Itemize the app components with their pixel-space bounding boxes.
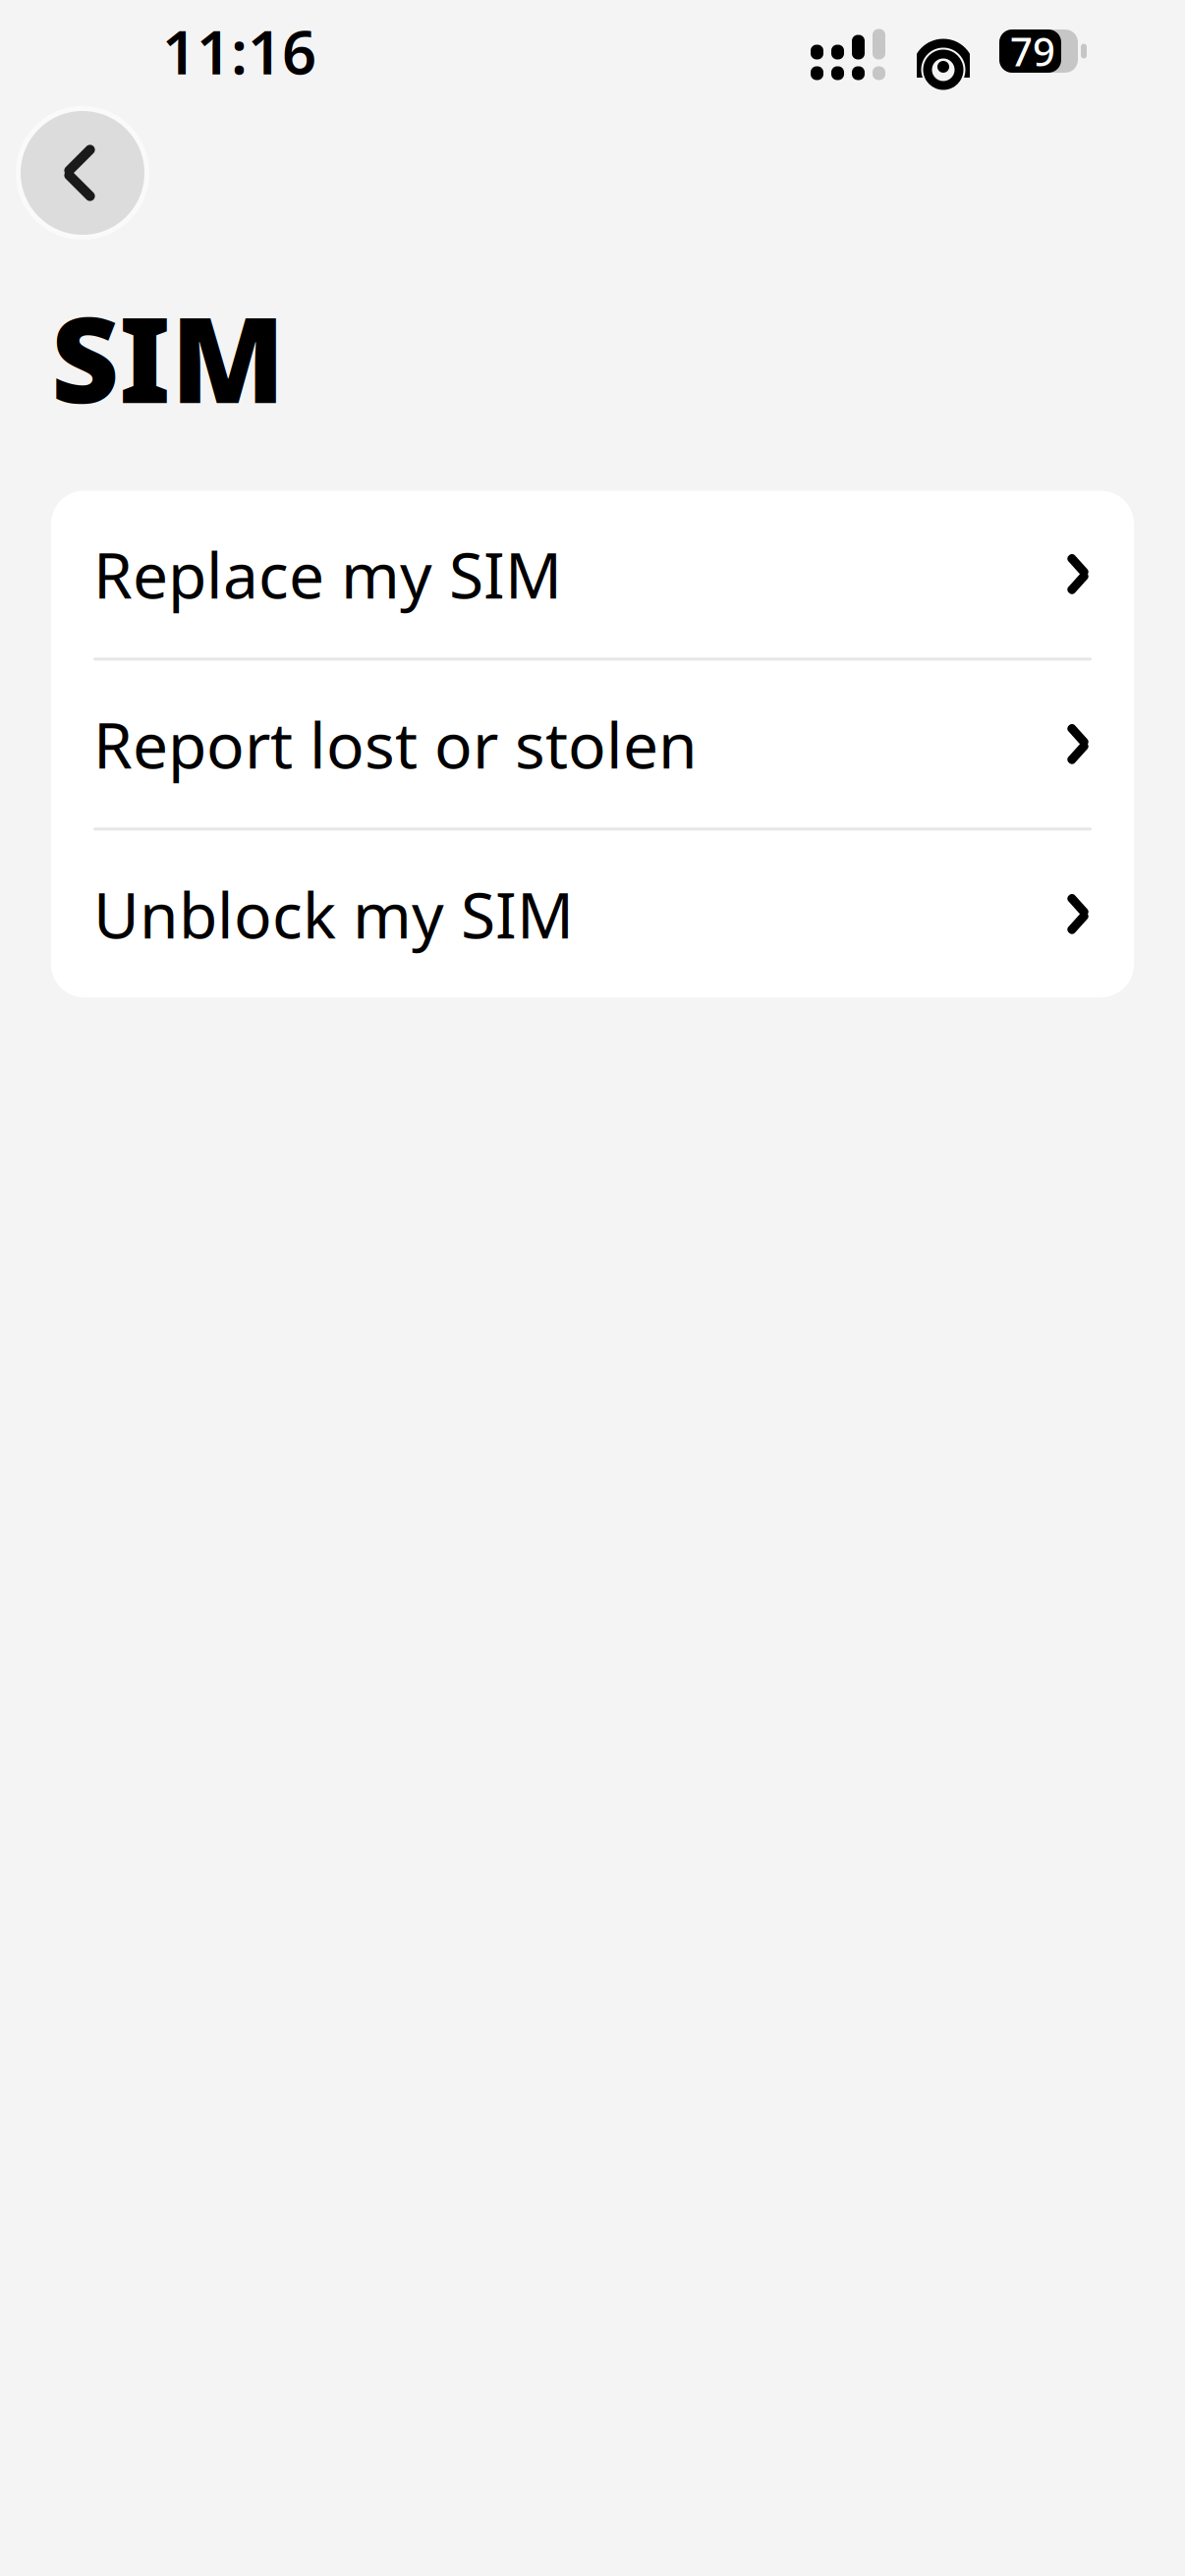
staticText: 79 xyxy=(1010,25,1055,77)
button[interactable]: Unblock my SIM xyxy=(51,831,1134,998)
staticText: 11:16 xyxy=(162,11,316,91)
staticText: Replace my SIM xyxy=(93,532,562,616)
button[interactable]: Back xyxy=(16,106,149,240)
staticText: Report lost or stolen xyxy=(93,702,698,786)
staticText: SIM xyxy=(51,279,285,436)
staticText: Unblock my SIM xyxy=(93,872,574,956)
button[interactable]: Report lost or stolen xyxy=(51,661,1134,828)
button[interactable]: Replace my SIM xyxy=(51,491,1134,658)
